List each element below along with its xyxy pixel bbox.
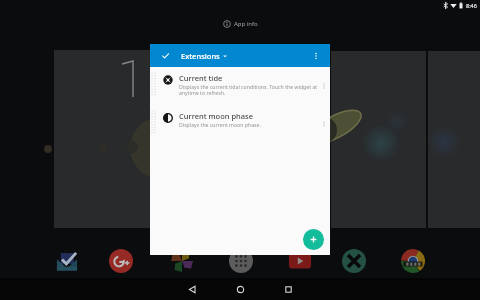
staticText: Extensions [181, 51, 220, 61]
button[interactable]: App 1 [107, 247, 135, 275]
button[interactable]: App 4 [286, 247, 314, 275]
button[interactable]: App info [217, 18, 264, 30]
button[interactable]: App 2 [168, 247, 196, 275]
button[interactable]: Add extension [303, 229, 324, 250]
staticText: Current tide [179, 73, 223, 83]
staticText: 8:46 [466, 2, 477, 9]
button[interactable]: More options [307, 44, 325, 67]
button[interactable]: Home [216, 278, 264, 300]
button[interactable]: Done [154, 44, 177, 67]
button[interactable]: App 0 [53, 247, 81, 275]
staticText: App info [234, 20, 258, 28]
button[interactable]: Item options [318, 105, 330, 143]
button[interactable]: Recent apps [264, 278, 312, 300]
button[interactable]: App 3 [227, 247, 255, 275]
button[interactable]: App 6 [399, 247, 427, 275]
button[interactable]: Current moon phase [150, 105, 330, 143]
button[interactable]: App 5 [340, 247, 368, 275]
button[interactable]: Current tide [150, 67, 330, 105]
staticText: Displays the current tidal conditions. T… [179, 83, 318, 96]
staticText: Displays the current moon phase. [179, 121, 261, 128]
staticText: Current moon phase [179, 111, 254, 121]
button[interactable]: Item options [318, 67, 330, 105]
button[interactable]: Extensions [181, 48, 227, 64]
button[interactable]: Back [168, 278, 216, 300]
